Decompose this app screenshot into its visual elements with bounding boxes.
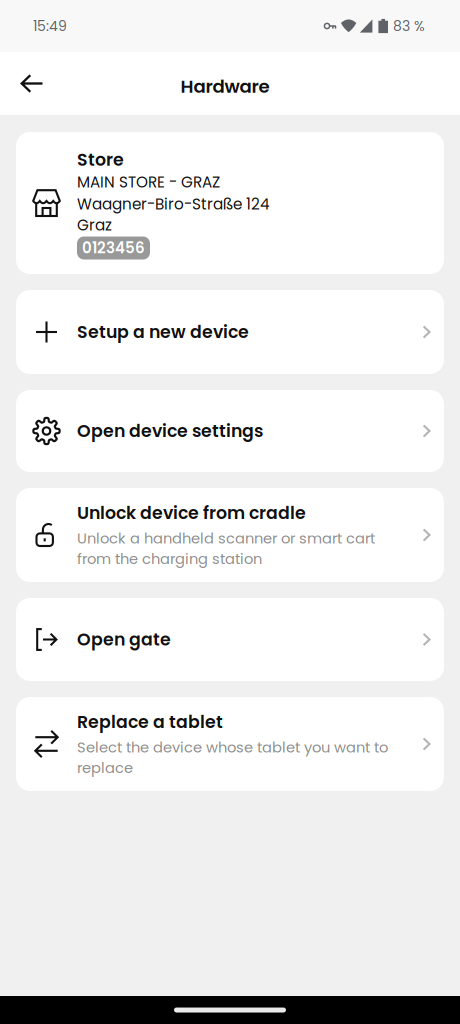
button[interactable]: Unlock device from cradle (16, 488, 444, 582)
staticText: Store (77, 147, 124, 172)
staticText: Unlock a handheld scanner or smart cart … (77, 528, 375, 569)
staticText: Unlock device from cradle (77, 501, 306, 525)
staticText: MAIN STORE - GRAZ (77, 171, 220, 193)
button[interactable]: Open device settings (16, 390, 444, 472)
button[interactable]: Open gate (16, 598, 444, 681)
staticText: Open gate (77, 627, 171, 652)
staticText: 83 % (393, 16, 425, 36)
staticText: Replace a tablet (77, 710, 223, 734)
staticText: Setup a new device (77, 320, 249, 344)
staticText: Waagner-Biro-Straße 124 (77, 193, 270, 215)
staticText: 15:49 (33, 16, 67, 36)
button[interactable]: Setup a new device (16, 290, 444, 374)
button[interactable]: Back (6, 57, 58, 109)
staticText: Hardware (180, 74, 269, 99)
staticText: Open device settings (77, 419, 263, 443)
staticText: Graz (77, 214, 112, 236)
staticText: Select the device whose tablet you want … (77, 737, 388, 778)
button[interactable]: Replace a tablet (16, 697, 444, 791)
staticText: 0123456 (82, 237, 145, 259)
